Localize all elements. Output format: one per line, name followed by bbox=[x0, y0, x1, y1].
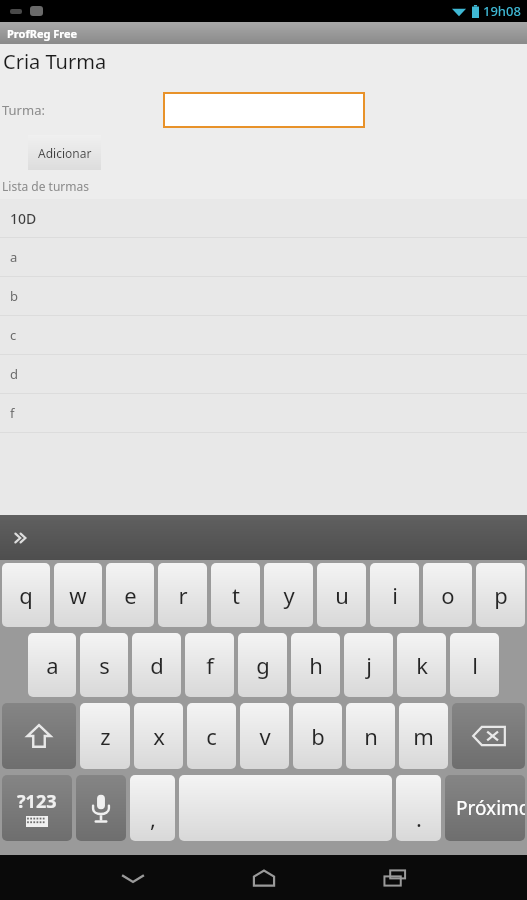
staticText: n bbox=[364, 721, 378, 751]
button[interactable]: Hide keyboard bbox=[109, 855, 157, 900]
button[interactable]: Symbols bbox=[2, 775, 72, 841]
button[interactable]: p bbox=[476, 563, 525, 627]
button[interactable]: k bbox=[397, 633, 446, 697]
staticText: z bbox=[100, 721, 111, 751]
button[interactable]: Home bbox=[240, 855, 288, 900]
staticText: 19h08 bbox=[483, 2, 521, 20]
staticText: ProfReg Free bbox=[7, 26, 78, 41]
button[interactable]: m bbox=[399, 703, 448, 769]
button[interactable]: j bbox=[344, 633, 393, 697]
staticText: p bbox=[494, 580, 508, 610]
button[interactable]: a bbox=[28, 633, 76, 697]
button[interactable]: a bbox=[0, 238, 527, 276]
staticText: Turma: bbox=[2, 101, 45, 119]
button[interactable]: Próximo bbox=[445, 775, 525, 841]
button[interactable]: c bbox=[187, 703, 236, 769]
button[interactable]: f bbox=[185, 633, 234, 697]
staticText: a bbox=[10, 248, 18, 266]
button[interactable]: Space bbox=[179, 775, 392, 841]
button[interactable]: n bbox=[346, 703, 395, 769]
staticText: k bbox=[416, 650, 428, 680]
staticText: c bbox=[206, 721, 217, 751]
staticText: ?123 bbox=[17, 789, 57, 814]
button[interactable]: . bbox=[396, 775, 441, 841]
button[interactable]: o bbox=[423, 563, 472, 627]
button[interactable]: i bbox=[370, 563, 419, 627]
staticText: q bbox=[19, 580, 33, 610]
staticText: r bbox=[178, 580, 188, 610]
staticText: Adicionar bbox=[38, 145, 92, 161]
staticText: f bbox=[10, 404, 15, 422]
staticText: s bbox=[99, 650, 110, 680]
staticText: b bbox=[311, 721, 325, 751]
staticText: l bbox=[472, 650, 478, 680]
button[interactable]: b bbox=[0, 277, 527, 315]
button[interactable]: Recent apps bbox=[371, 855, 419, 900]
button[interactable]: g bbox=[238, 633, 287, 697]
button[interactable]: Shift bbox=[2, 703, 76, 769]
staticText: t bbox=[232, 580, 240, 610]
staticText: m bbox=[413, 721, 434, 751]
button[interactable]: u bbox=[317, 563, 366, 627]
button[interactable]: e bbox=[106, 563, 154, 627]
button[interactable]: x bbox=[134, 703, 183, 769]
button[interactable]: Backspace bbox=[452, 703, 525, 769]
staticText: h bbox=[309, 650, 323, 680]
staticText: Cria Turma bbox=[3, 48, 107, 75]
staticText: v bbox=[259, 721, 271, 751]
button[interactable]: l bbox=[450, 633, 499, 697]
staticText: y bbox=[283, 580, 295, 610]
button[interactable]: r bbox=[158, 563, 207, 627]
staticText: , bbox=[150, 803, 156, 833]
button[interactable]: s bbox=[80, 633, 128, 697]
button[interactable]: Voice input bbox=[76, 775, 126, 841]
button[interactable]: q bbox=[2, 563, 50, 627]
button[interactable]: Adicionar bbox=[28, 135, 101, 170]
button[interactable]: v bbox=[240, 703, 289, 769]
button[interactable]: , bbox=[130, 775, 175, 841]
button[interactable]: h bbox=[291, 633, 340, 697]
staticText: c bbox=[10, 326, 17, 344]
staticText: o bbox=[441, 580, 455, 610]
staticText: . bbox=[416, 803, 422, 833]
button[interactable]: d bbox=[132, 633, 181, 697]
button[interactable]: d bbox=[0, 355, 527, 393]
staticText: 10D bbox=[10, 209, 37, 228]
button[interactable]: w bbox=[54, 563, 102, 627]
staticText: a bbox=[46, 650, 59, 680]
staticText: g bbox=[256, 650, 270, 680]
button[interactable]: b bbox=[293, 703, 342, 769]
staticText: i bbox=[392, 580, 398, 610]
staticText: b bbox=[10, 287, 18, 305]
staticText: j bbox=[366, 650, 372, 680]
staticText: f bbox=[206, 650, 214, 680]
staticText: Lista de turmas bbox=[2, 178, 89, 194]
button[interactable]: t bbox=[211, 563, 260, 627]
staticText: d bbox=[10, 365, 18, 383]
staticText: e bbox=[124, 580, 137, 610]
button[interactable]: More suggestions bbox=[0, 515, 527, 560]
staticText: d bbox=[150, 650, 164, 680]
staticText: u bbox=[335, 580, 349, 610]
staticText: Próximo bbox=[456, 795, 525, 821]
staticText: x bbox=[153, 721, 165, 751]
staticText: w bbox=[69, 580, 87, 610]
button[interactable]: z bbox=[80, 703, 130, 769]
button[interactable]: y bbox=[264, 563, 313, 627]
button[interactable]: 10D bbox=[0, 199, 527, 237]
